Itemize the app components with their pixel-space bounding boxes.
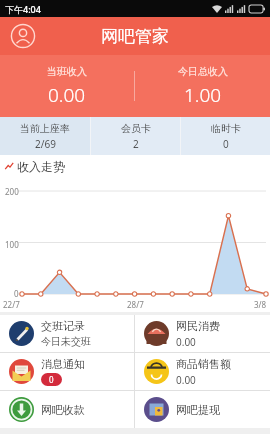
staticText: 1.00 <box>184 82 222 108</box>
staticText: 网吧管家 <box>101 26 169 47</box>
staticText: 100 <box>5 239 19 250</box>
staticText: 200 <box>5 186 19 197</box>
staticText: 3/8 <box>254 299 267 310</box>
button[interactable]: 消息通知 <box>0 353 134 390</box>
button[interactable]: 当班收入 <box>0 65 134 108</box>
staticText: 交班记录 <box>41 319 85 333</box>
staticText: 网吧收款 <box>41 403 85 417</box>
button[interactable]: 临时卡 <box>181 117 270 155</box>
button[interactable]: 网吧收款 <box>0 391 134 428</box>
staticText: 0 <box>14 288 19 299</box>
button[interactable]: 今日总收入 <box>135 65 270 108</box>
staticText: 28/7 <box>127 299 144 310</box>
staticText: 2/69 <box>35 137 56 151</box>
button[interactable]: 当前上座率 <box>0 117 90 155</box>
staticText: 网民消费 <box>176 319 220 333</box>
button[interactable]: 交班记录 <box>0 315 134 352</box>
staticText: 0.00 <box>48 82 86 108</box>
button[interactable]: 网吧提现 <box>135 391 270 428</box>
staticText: 临时卡 <box>211 122 241 135</box>
staticText: 网吧提现 <box>176 403 220 417</box>
staticText: 0 <box>223 137 229 151</box>
button[interactable]: Profile <box>10 23 36 49</box>
button[interactable]: 商品销售额 <box>135 353 270 390</box>
button[interactable]: 网民消费 <box>135 315 270 352</box>
staticText: 会员卡 <box>121 122 151 135</box>
button[interactable]: 会员卡 <box>91 117 180 155</box>
staticText: 商品销售额 <box>176 357 231 371</box>
staticText: 0.00 <box>176 373 196 387</box>
staticText: 当前上座率 <box>20 122 70 135</box>
staticText: 0.00 <box>176 335 196 349</box>
staticText: 22/7 <box>3 299 20 310</box>
staticText: 2 <box>133 137 139 151</box>
staticText: 今日总收入 <box>178 65 228 78</box>
staticText: 0 <box>49 374 54 385</box>
staticText: 今日未交班 <box>41 335 91 348</box>
staticText: 当班收入 <box>47 65 87 78</box>
staticText: 下午4:04 <box>5 3 41 15</box>
staticText: 收入走势 <box>17 159 65 174</box>
staticText: 消息通知 <box>41 357 85 371</box>
